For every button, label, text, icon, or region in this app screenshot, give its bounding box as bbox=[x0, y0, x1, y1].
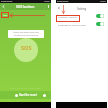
button[interactable]: Start the event bbox=[13, 92, 39, 98]
staticText: Location service bbox=[58, 15, 77, 18]
staticText: Start the event bbox=[19, 93, 37, 97]
staticText: Emergency bbox=[57, 0, 69, 3]
staticText: SOS button bbox=[16, 4, 35, 9]
button[interactable]: More options bbox=[45, 3, 51, 10]
button[interactable]: Emergency call for help bbox=[58, 20, 104, 28]
staticText: 12:30 bbox=[100, 0, 106, 3]
button[interactable]: Check text again after this current city… bbox=[8, 30, 44, 38]
staticText: Emergency bbox=[1, 0, 13, 3]
staticText: Press and hold to send SOS bbox=[10, 86, 41, 89]
button[interactable]: Location service bbox=[58, 12, 104, 20]
staticText: SOS bbox=[21, 44, 32, 51]
staticText: Setting bbox=[77, 7, 87, 11]
staticText: 12:30 bbox=[44, 0, 50, 3]
button[interactable]: SOS bbox=[14, 38, 38, 62]
button[interactable]: Back bbox=[0, 3, 6, 10]
button[interactable]: Back bbox=[56, 3, 61, 12]
staticText: Emergency call for help bbox=[58, 23, 86, 26]
staticText: SOS bbox=[3, 14, 8, 17]
staticText: Check text again after this current city… bbox=[13, 31, 39, 37]
button[interactable]: Settings bbox=[41, 92, 47, 98]
